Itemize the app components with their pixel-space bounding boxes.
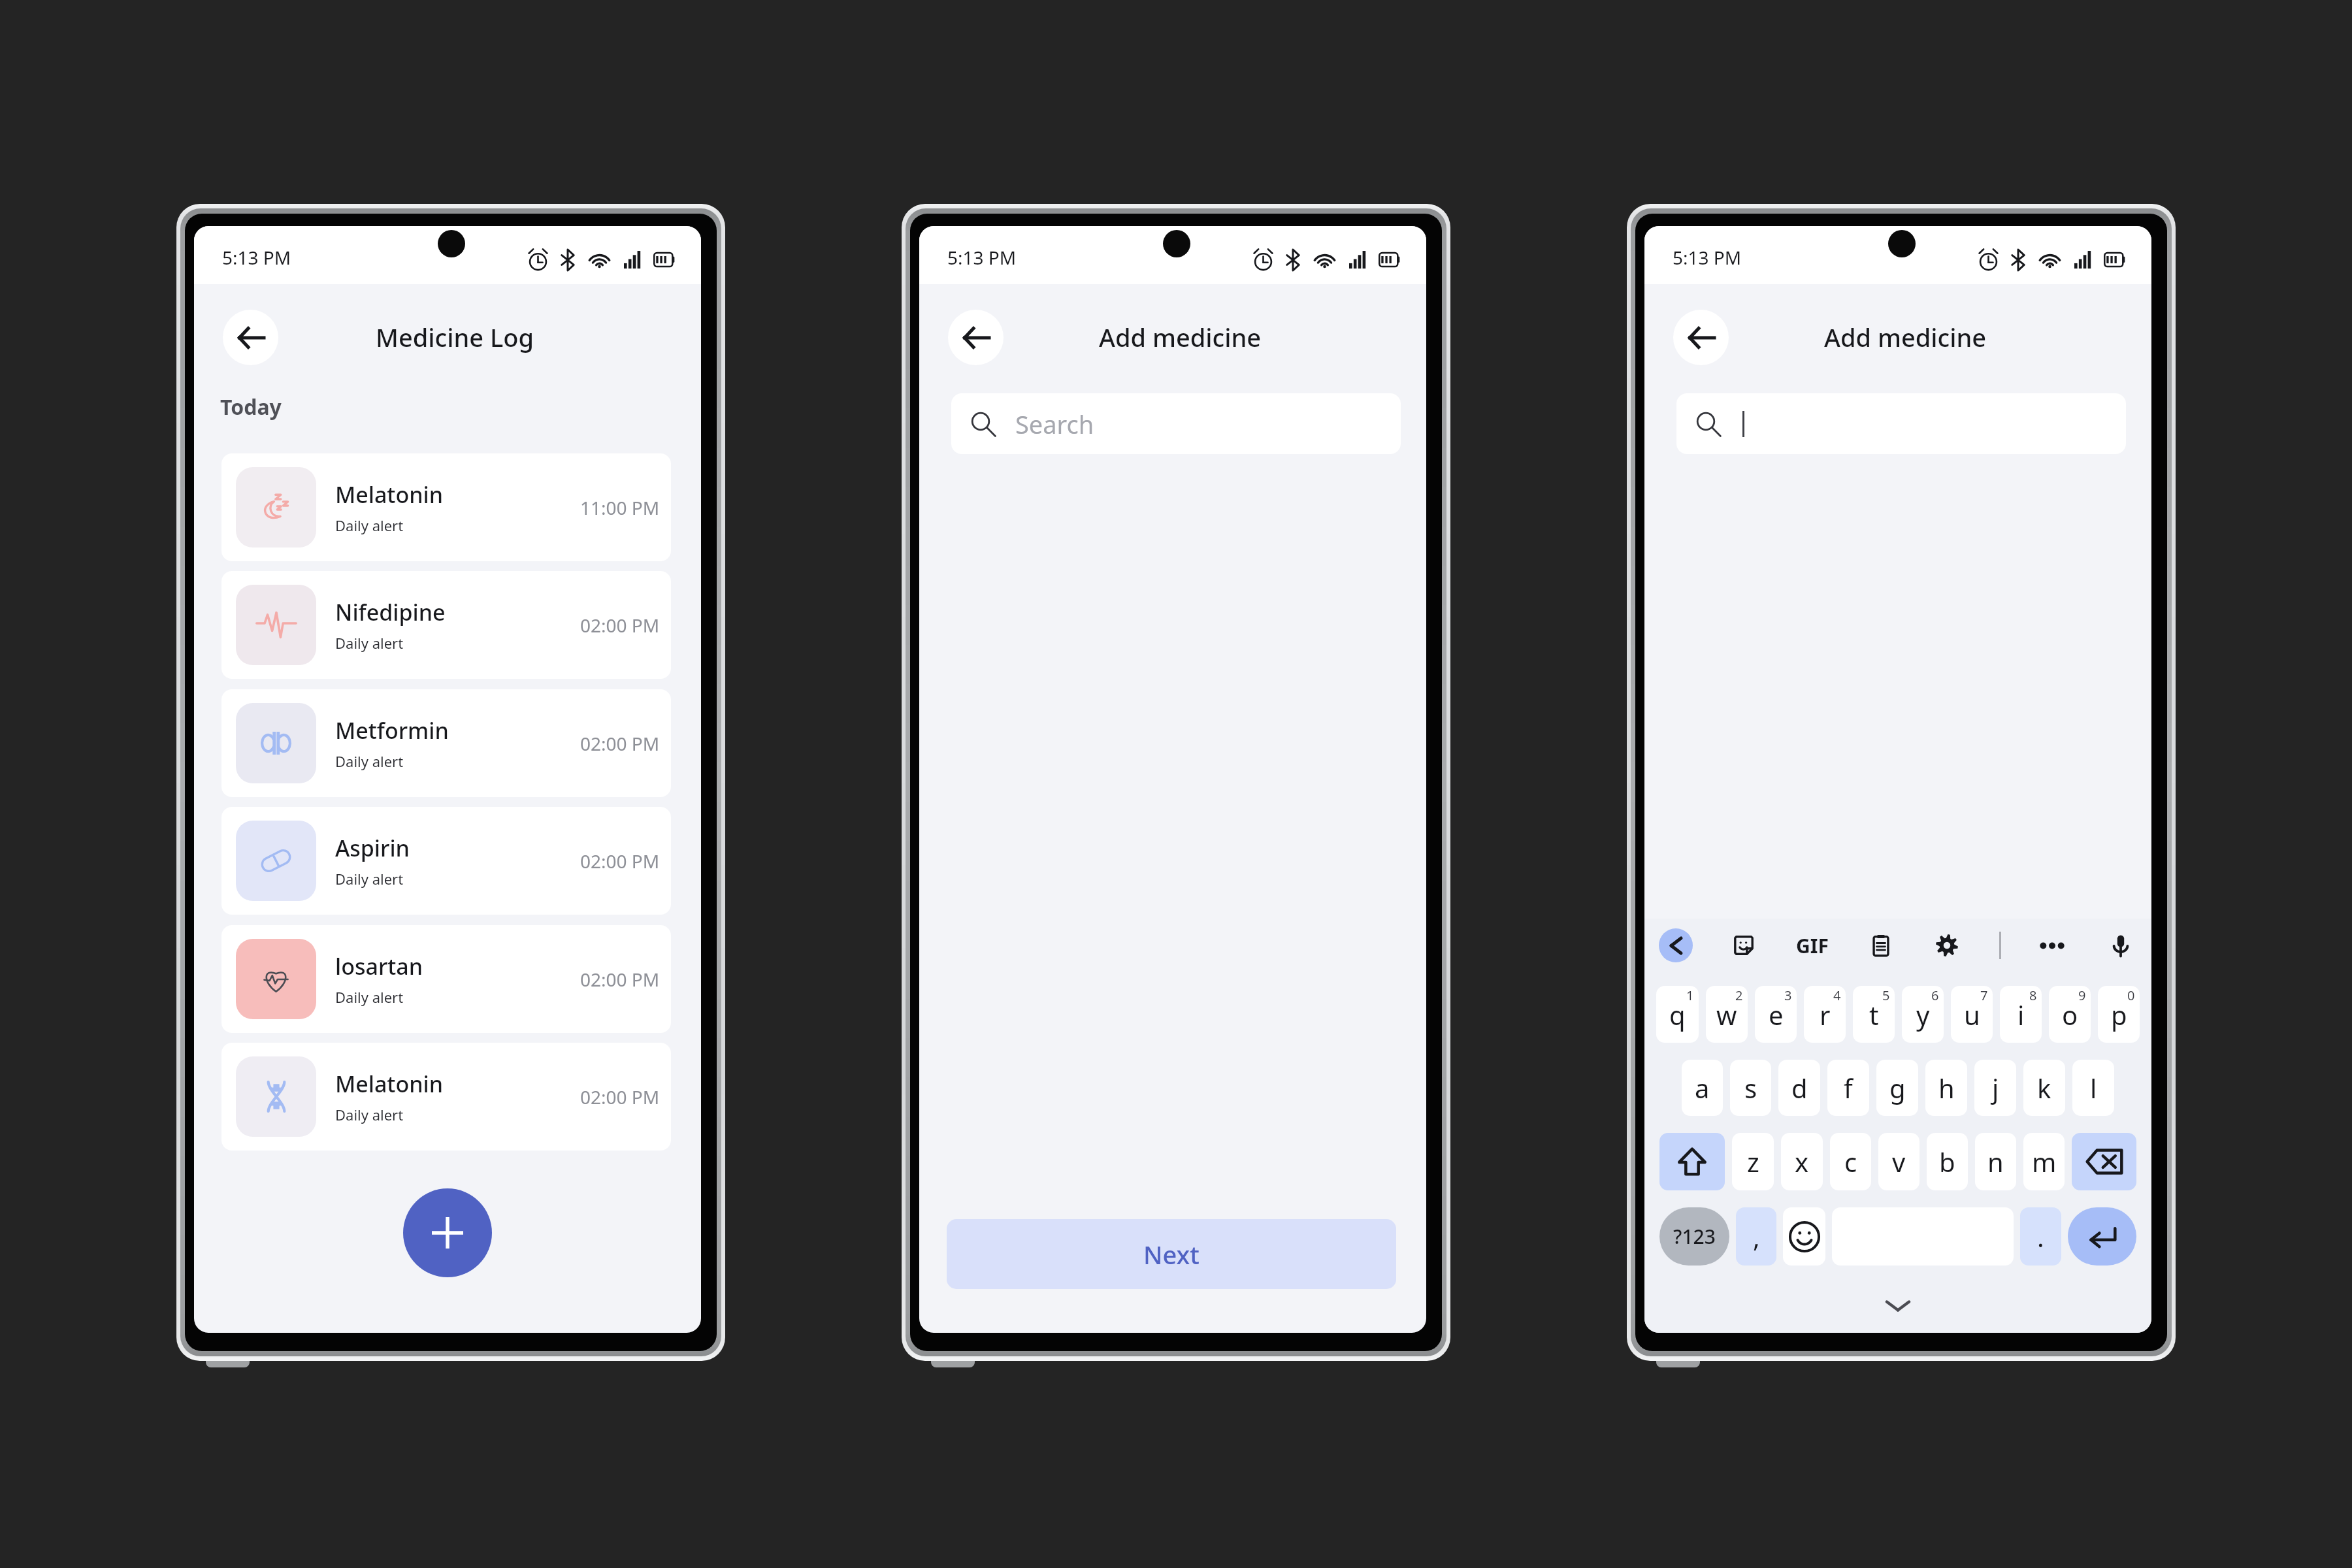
button[interactable]: g bbox=[1876, 1060, 1918, 1116]
staticText: s bbox=[1744, 1070, 1757, 1105]
staticText: Add medicine bbox=[1099, 320, 1262, 354]
button[interactable]: losartan bbox=[221, 925, 671, 1033]
button[interactable]: z bbox=[1732, 1133, 1774, 1190]
staticText: 6 bbox=[1931, 987, 1939, 1004]
button[interactable]: u bbox=[1951, 986, 1993, 1043]
button[interactable]: ?123 bbox=[1659, 1207, 1729, 1266]
staticText: Daily alert bbox=[335, 1105, 404, 1124]
staticText: u bbox=[1964, 997, 1980, 1032]
staticText: 7 bbox=[1980, 987, 1988, 1004]
button[interactable] bbox=[1676, 393, 2126, 454]
button[interactable]: t bbox=[1853, 986, 1895, 1043]
button[interactable]: i bbox=[2000, 986, 2042, 1043]
button[interactable]: h bbox=[1925, 1060, 1967, 1116]
staticText: 5:13 PM bbox=[1673, 245, 1742, 270]
staticText: a bbox=[1695, 1070, 1710, 1105]
staticText: 02:00 PM bbox=[580, 613, 660, 638]
button[interactable]: Emoji bbox=[1783, 1207, 1825, 1266]
button[interactable]: r bbox=[1804, 986, 1846, 1043]
button[interactable]: Hide keyboard bbox=[1878, 1294, 1918, 1316]
button[interactable]: y bbox=[1902, 986, 1944, 1043]
staticText: j bbox=[1992, 1070, 1999, 1105]
button[interactable]: Melatonin bbox=[221, 1043, 671, 1151]
staticText: GIF bbox=[1796, 932, 1829, 959]
staticText: q bbox=[1669, 997, 1686, 1032]
staticText: 02:00 PM bbox=[580, 967, 660, 992]
staticText: Metformin bbox=[335, 715, 449, 745]
button[interactable]: Backspace bbox=[2072, 1133, 2136, 1190]
button[interactable]: GIF bbox=[1793, 930, 1832, 960]
staticText: 5:13 PM bbox=[222, 245, 291, 270]
staticText: d bbox=[1791, 1070, 1808, 1105]
button[interactable]: o bbox=[2049, 986, 2091, 1043]
button[interactable]: . bbox=[2020, 1207, 2061, 1266]
button[interactable]: s bbox=[1730, 1060, 1771, 1116]
button[interactable]: e bbox=[1755, 986, 1797, 1043]
button[interactable]: Metformin bbox=[221, 689, 671, 797]
button[interactable]: k bbox=[2023, 1060, 2065, 1116]
staticText: r bbox=[1820, 997, 1831, 1032]
staticText: Melatonin bbox=[335, 1069, 443, 1099]
button[interactable]: More options bbox=[2037, 930, 2067, 960]
staticText: m bbox=[2032, 1144, 2057, 1179]
button[interactable]: d bbox=[1778, 1060, 1820, 1116]
button[interactable]: Previous bbox=[1659, 928, 1693, 962]
button[interactable]: q bbox=[1656, 986, 1699, 1043]
button[interactable]: c bbox=[1830, 1133, 1871, 1190]
button[interactable]: b bbox=[1927, 1133, 1968, 1190]
staticText: 2 bbox=[1735, 987, 1743, 1004]
button[interactable]: f bbox=[1827, 1060, 1869, 1116]
button[interactable]: Add medicine bbox=[403, 1188, 492, 1277]
button[interactable]: , bbox=[1736, 1207, 1776, 1266]
staticText: h bbox=[1938, 1070, 1955, 1105]
button[interactable]: Search bbox=[951, 393, 1401, 454]
button[interactable]: Back bbox=[948, 310, 1004, 365]
button[interactable]: Clipboard bbox=[1866, 930, 1896, 960]
staticText: 02:00 PM bbox=[580, 1085, 660, 1109]
staticText: x bbox=[1795, 1144, 1809, 1179]
button[interactable]: Shift bbox=[1659, 1133, 1725, 1190]
button[interactable]: Stickers bbox=[1729, 930, 1759, 960]
staticText: v bbox=[1892, 1144, 1906, 1179]
staticText: y bbox=[1916, 997, 1930, 1032]
button[interactable]: m bbox=[2023, 1133, 2065, 1190]
button[interactable]: p bbox=[2098, 986, 2140, 1043]
staticText: g bbox=[1889, 1070, 1906, 1105]
staticText: 4 bbox=[1833, 987, 1841, 1004]
staticText: , bbox=[1753, 1219, 1760, 1254]
button[interactable]: v bbox=[1878, 1133, 1919, 1190]
staticText: 02:00 PM bbox=[580, 849, 660, 874]
staticText: l bbox=[2090, 1070, 2097, 1105]
staticText: 3 bbox=[1784, 987, 1792, 1004]
staticText: k bbox=[2037, 1070, 2051, 1105]
button[interactable]: l bbox=[2072, 1060, 2114, 1116]
button[interactable]: Back bbox=[1673, 310, 1729, 365]
button[interactable]: Nifedipine bbox=[221, 571, 671, 679]
button[interactable]: Settings bbox=[1932, 930, 1962, 960]
staticText: Daily alert bbox=[335, 633, 404, 653]
button[interactable]: a bbox=[1682, 1060, 1723, 1116]
staticText: i bbox=[2017, 997, 2025, 1032]
staticText: Medicine Log bbox=[376, 320, 534, 354]
staticText: Daily alert bbox=[335, 751, 404, 771]
button[interactable]: j bbox=[1974, 1060, 2016, 1116]
staticText: Aspirin bbox=[335, 833, 410, 863]
staticText: Melatonin bbox=[335, 480, 443, 510]
button[interactable]: w bbox=[1706, 986, 1748, 1043]
button[interactable]: Next bbox=[947, 1219, 1396, 1289]
staticText: Today bbox=[220, 393, 282, 421]
staticText: 1 bbox=[1686, 987, 1694, 1004]
button[interactable]: Back bbox=[223, 310, 278, 365]
button[interactable]: n bbox=[1975, 1133, 2016, 1190]
button[interactable]: Aspirin bbox=[221, 807, 671, 915]
staticText: f bbox=[1844, 1070, 1853, 1105]
button[interactable]: Melatonin bbox=[221, 453, 671, 561]
button[interactable]: Enter bbox=[2068, 1207, 2136, 1266]
button[interactable]: x bbox=[1781, 1133, 1823, 1190]
staticText: Nifedipine bbox=[335, 597, 446, 627]
staticText: t bbox=[1869, 997, 1879, 1032]
button[interactable]: Voice input bbox=[2106, 930, 2136, 960]
staticText: 02:00 PM bbox=[580, 731, 660, 756]
staticText: 9 bbox=[2078, 987, 2086, 1004]
